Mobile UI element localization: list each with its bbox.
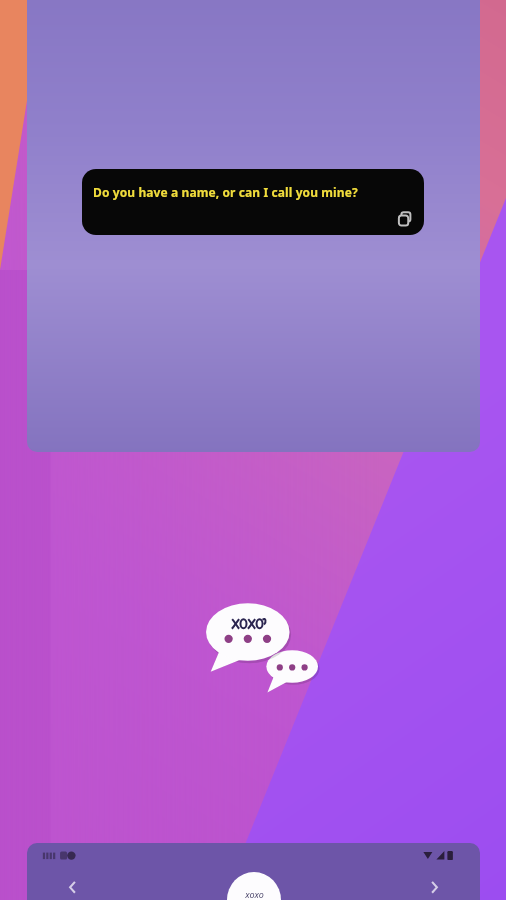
button[interactable]: Copy — [396, 210, 414, 228]
other: Previous — [65, 879, 81, 895]
button[interactable]: xoxo — [27, 843, 480, 900]
button[interactable] — [27, 0, 480, 452]
staticText: xoxo — [245, 888, 264, 900]
button[interactable]: Do you have a name, or can I call you mi… — [82, 169, 424, 235]
other: Next — [426, 879, 442, 895]
staticText: Do you have a name, or can I call you mi… — [93, 184, 358, 200]
